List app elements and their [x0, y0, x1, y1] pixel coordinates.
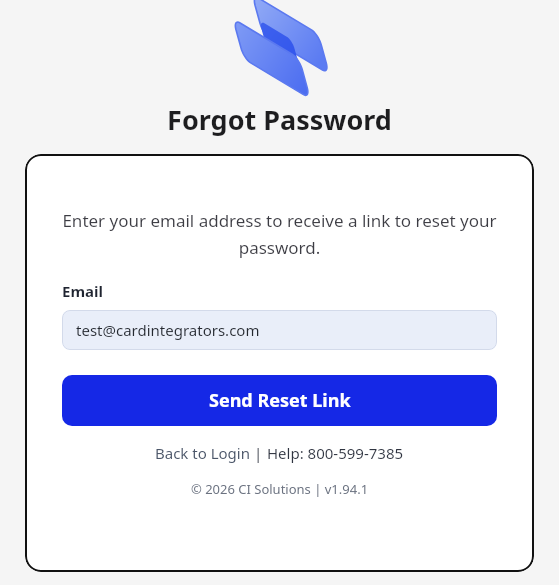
staticText: Back to Login	[155, 443, 250, 463]
staticText: |	[250, 443, 267, 463]
staticText: Forgot Password	[0, 101, 559, 138]
staticText: Help: 800-599-7385	[267, 443, 404, 463]
button[interactable]: test@cardintegrators.com	[62, 310, 497, 350]
staticText: Send Reset Link	[209, 388, 351, 413]
button[interactable]: Back to Login	[155, 443, 250, 463]
other: CI Solutions logo	[224, 5, 336, 87]
staticText: Enter your email address to receive a li…	[62, 209, 497, 259]
staticText: © 2026 CI Solutions | v1.94.1	[62, 480, 497, 498]
button[interactable]: Help: 800-599-7385	[267, 443, 404, 463]
staticText: Email	[62, 281, 103, 301]
staticText: test@cardintegrators.com	[76, 320, 260, 340]
button[interactable]: Send Reset Link	[62, 375, 497, 426]
